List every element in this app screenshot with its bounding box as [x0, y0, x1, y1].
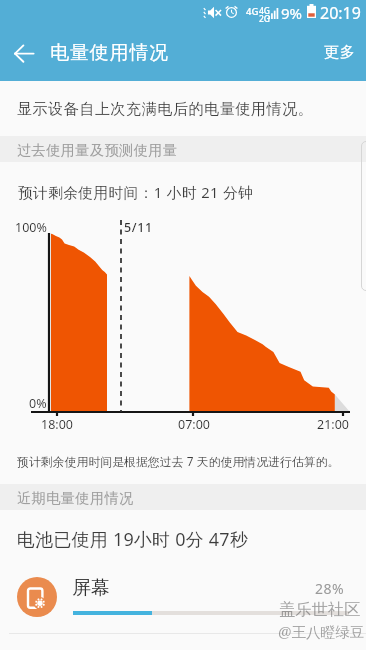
staticText: @王八瞪绿豆: [278, 621, 365, 641]
staticText: 预计剩余使用时间：1 小时 21 分钟: [18, 182, 254, 202]
staticText: 预计剩余使用时间是根据您过去 7 天的使用情况进行估算的。: [17, 453, 340, 469]
staticText: 18:00: [41, 416, 73, 433]
staticText: 过去使用量及预测使用量: [17, 141, 178, 159]
staticText: 2G: [259, 13, 271, 25]
staticText: 4G: [259, 5, 271, 17]
button[interactable]: 更多: [311, 36, 366, 69]
staticText: 28%: [315, 579, 345, 598]
staticText: 电池已使用 19小时 0分 47秒: [17, 527, 248, 552]
staticText: 更多: [324, 43, 356, 62]
staticText: 07:00: [178, 416, 210, 433]
staticText: 100%: [15, 219, 47, 236]
staticText: 电量使用情况: [50, 41, 169, 65]
staticText: 5/11: [124, 219, 153, 236]
staticText: 显示设备自上次充满电后的电量使用情况。: [17, 100, 314, 119]
staticText: 盖乐世社区: [279, 599, 361, 620]
button[interactable]: Back: [8, 36, 42, 70]
staticText: 9%: [281, 3, 303, 23]
button[interactable]: 屏幕: [0, 565, 366, 633]
staticText: 屏幕: [72, 576, 110, 600]
staticText: 0%: [29, 395, 47, 412]
staticText: 21:00: [317, 416, 349, 433]
staticText: 20:19: [320, 2, 361, 24]
staticText: 近期电量使用情况: [17, 489, 134, 507]
staticText: 4G: [246, 5, 259, 18]
